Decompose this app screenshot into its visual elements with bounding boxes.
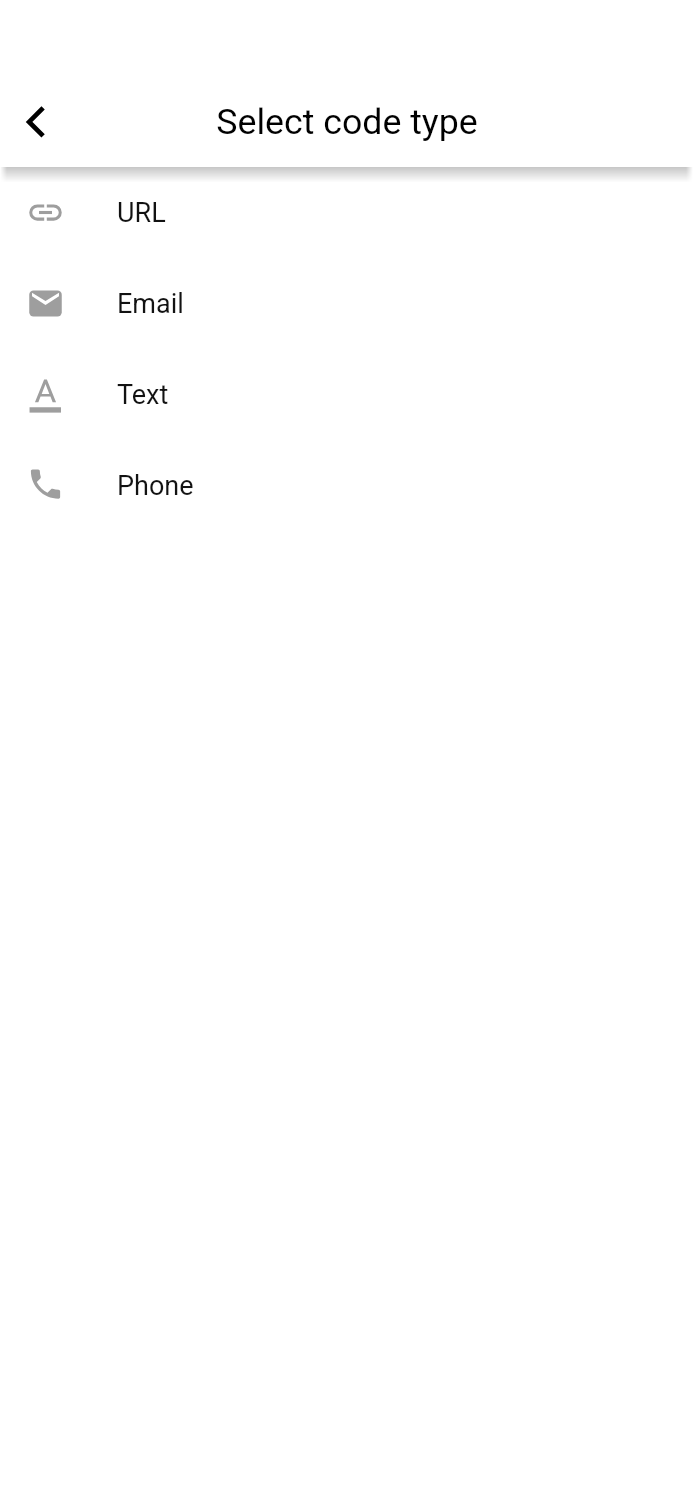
staticText: URL: [117, 197, 166, 229]
staticText: Email: [117, 288, 184, 320]
staticText: Phone: [117, 470, 194, 502]
button[interactable]: Email: [0, 258, 693, 349]
button[interactable]: Navigate back: [8, 101, 64, 157]
button[interactable]: Phone: [0, 440, 693, 531]
staticText: Select code type: [216, 101, 478, 143]
staticText: Text: [117, 379, 169, 411]
button[interactable]: Text: [0, 349, 693, 440]
button[interactable]: URL: [0, 167, 693, 258]
